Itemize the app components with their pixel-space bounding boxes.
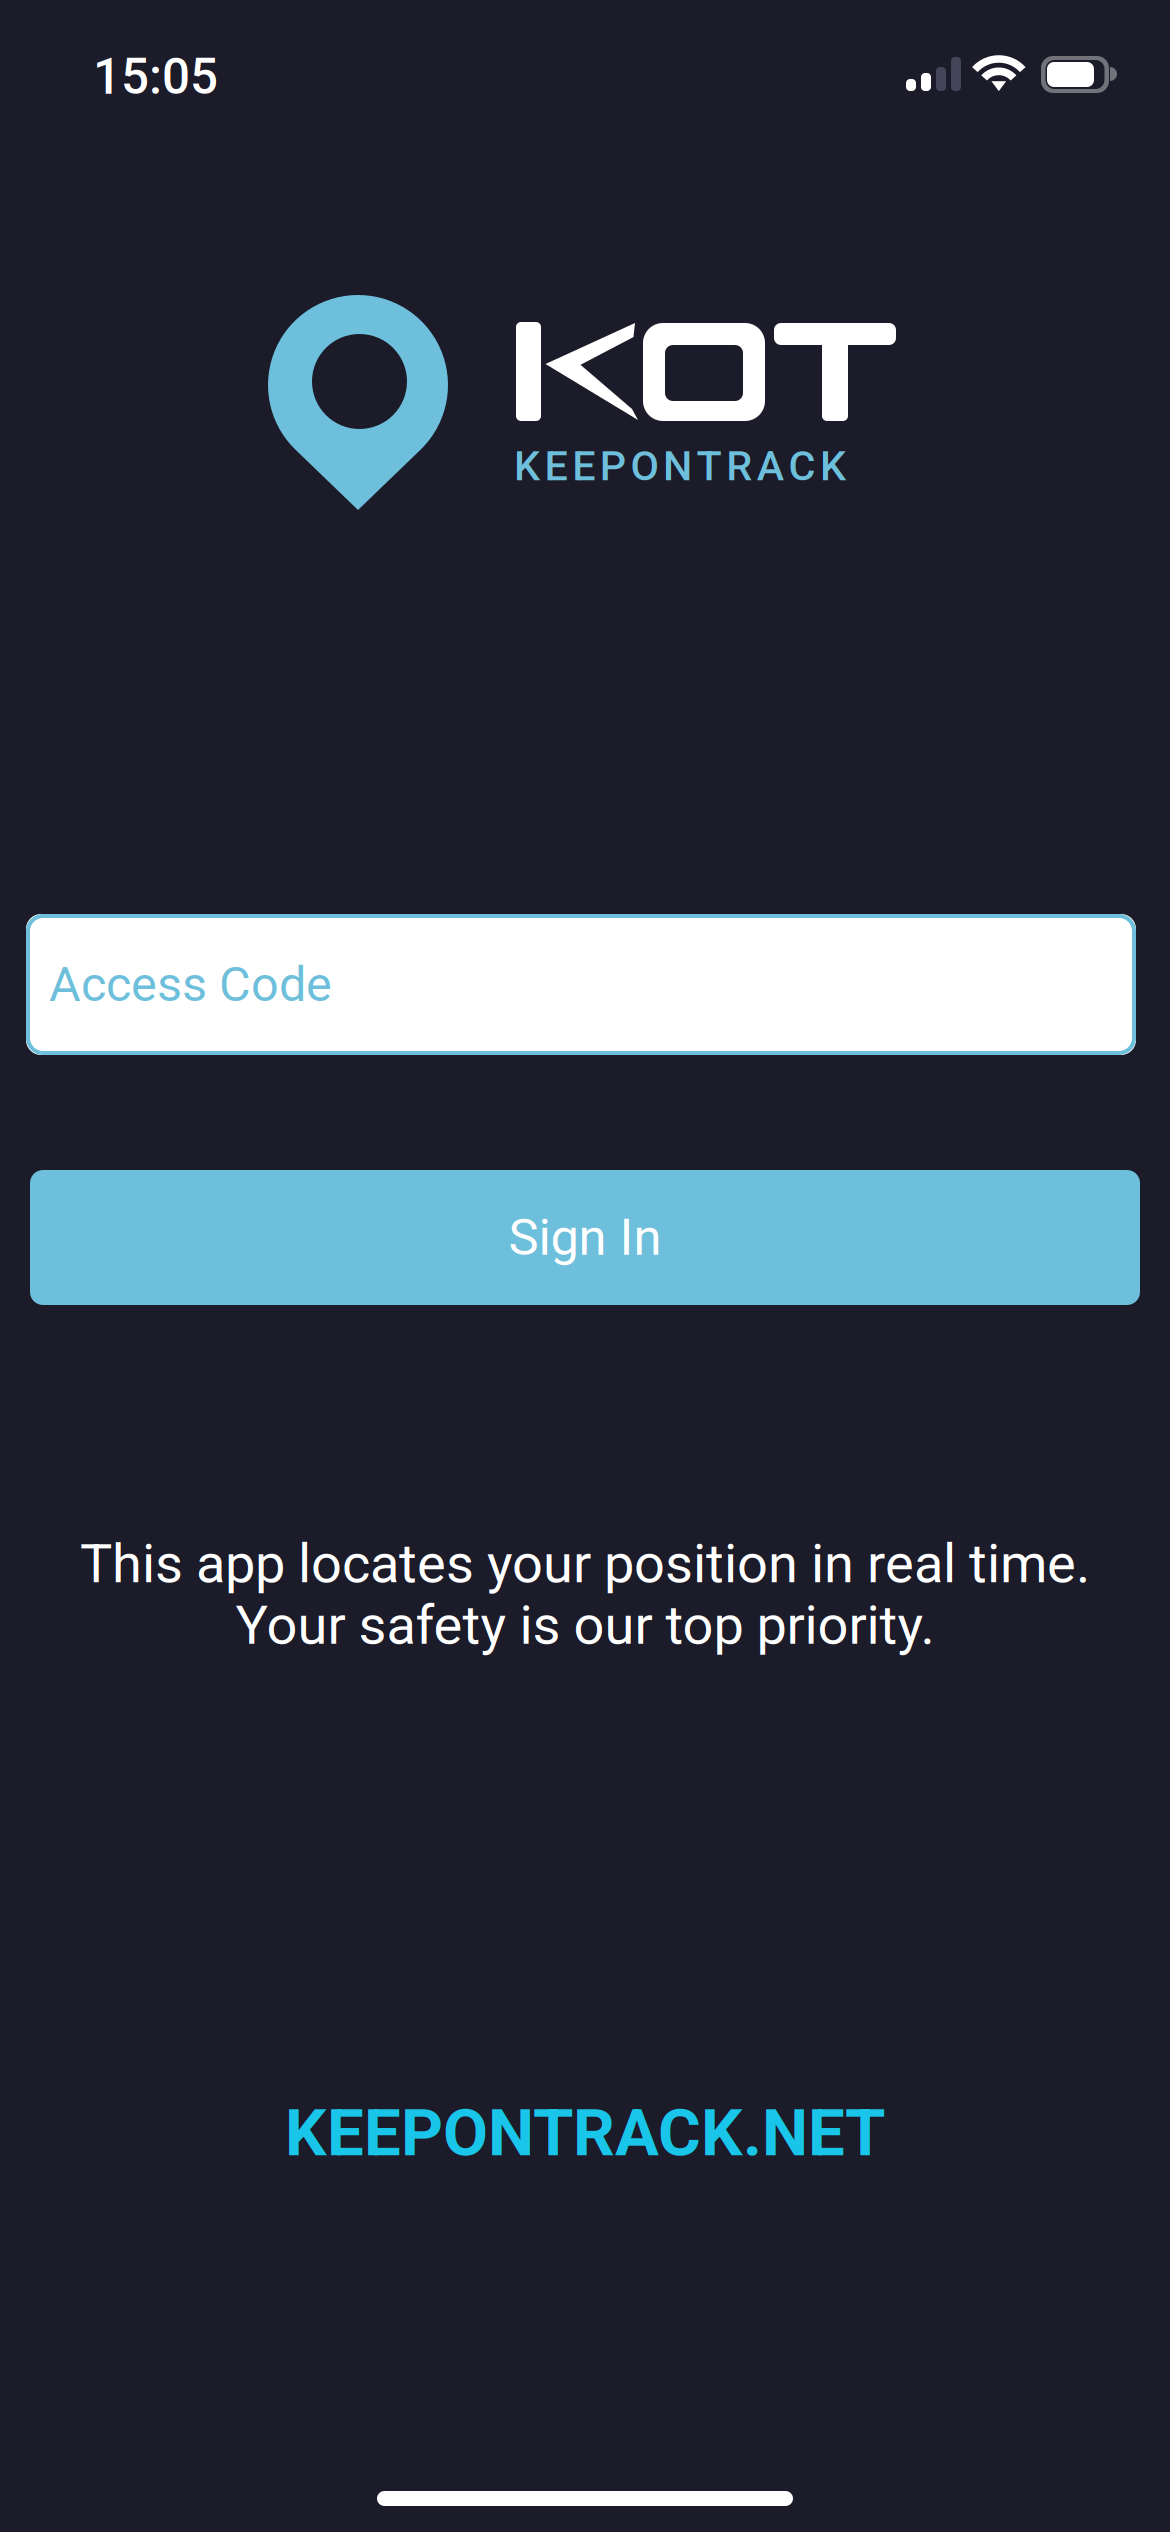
staticText: 15:05 [93, 48, 218, 106]
staticText: KEEPONTRACK.NET [285, 2095, 885, 2171]
staticText: This app locates your position in real t… [80, 1532, 1090, 1595]
staticText: KEEPONTRACK [514, 442, 846, 490]
button[interactable]: Sign In [30, 1170, 1140, 1305]
staticText: Sign In [508, 1208, 661, 1267]
button[interactable]: KEEPONTRACK.NET [0, 2098, 1170, 2168]
staticText: Access Code [49, 956, 332, 1013]
staticText: Your safety is our top priority. [235, 1593, 934, 1657]
